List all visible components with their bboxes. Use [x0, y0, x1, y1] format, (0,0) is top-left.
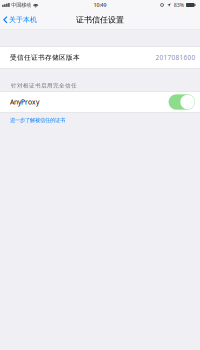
button[interactable]: 进一步了解被信任的证书	[0, 112, 200, 125]
staticText: 针对根证书启用完全信任	[11, 82, 77, 89]
button[interactable]: AnyProxy	[0, 92, 200, 112]
staticText: 关于本机	[9, 15, 37, 24]
staticText: 证书信任设置	[76, 15, 124, 25]
staticText: 受信任证书存储区版本	[10, 53, 80, 62]
staticText: 进一步了解被信任的证书	[10, 117, 65, 123]
staticText: 中国移动	[11, 2, 31, 8]
staticText: AnyProxy	[10, 97, 39, 107]
staticText: 83%	[174, 1, 184, 9]
staticText: 10:49	[93, 1, 106, 9]
staticText: 2017081600	[155, 53, 195, 62]
button[interactable]: 关于本机	[0, 10, 41, 29]
